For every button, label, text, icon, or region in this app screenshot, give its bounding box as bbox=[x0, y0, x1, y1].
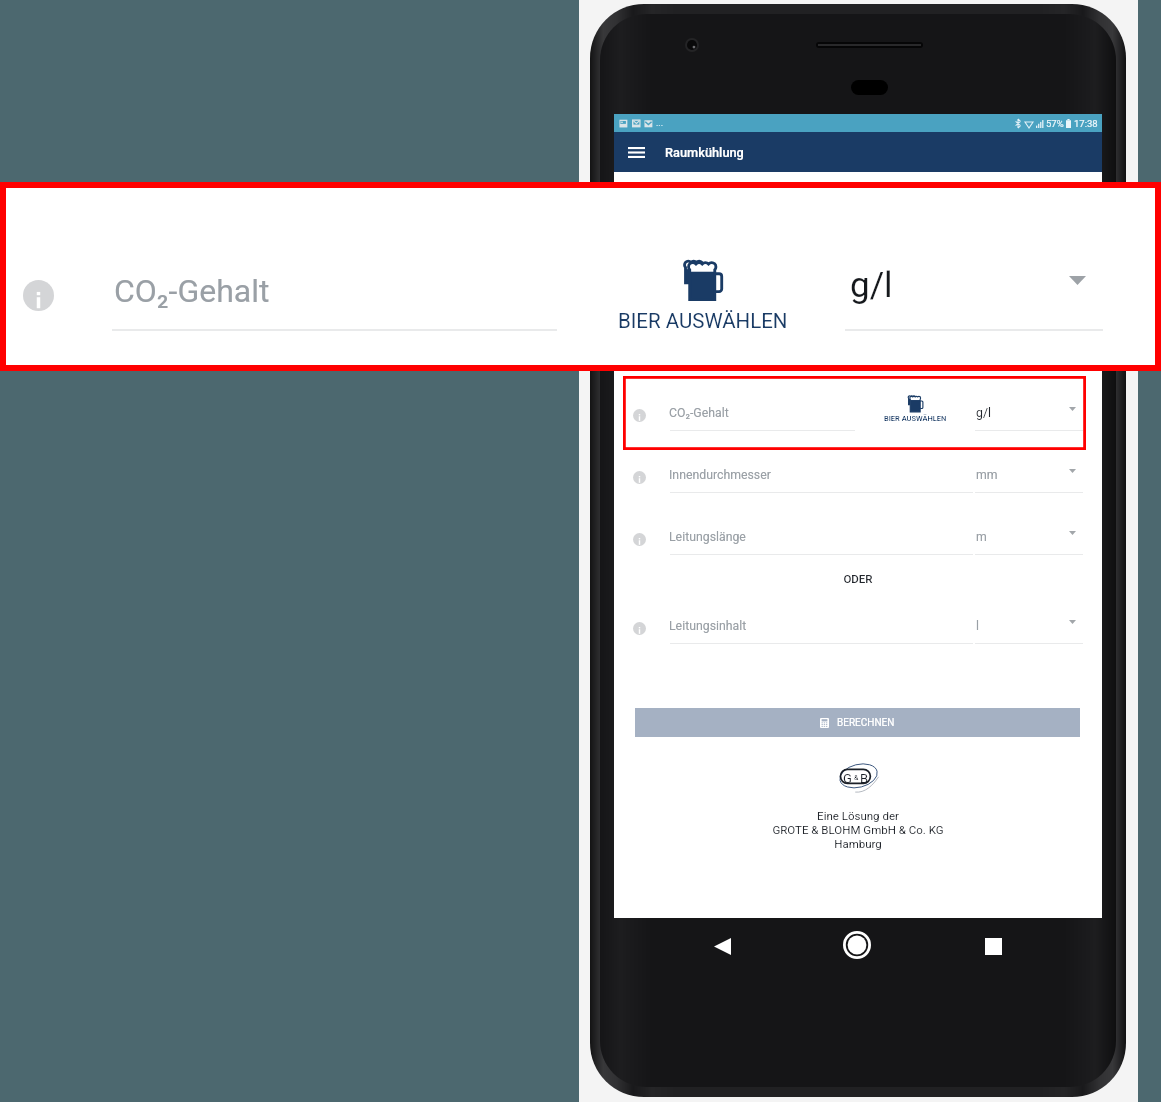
staticText: g/l bbox=[976, 406, 991, 420]
button[interactable]: BIER AUSWÄHLEN bbox=[615, 262, 791, 333]
button[interactable]: Innendurchmesser bbox=[614, 438, 1102, 500]
button[interactable]: Leitungsinhalt bbox=[614, 589, 1102, 651]
button[interactable]: Open navigation menu bbox=[620, 136, 652, 168]
staticText: l bbox=[976, 619, 979, 633]
staticText: Leitungsinhalt bbox=[669, 619, 747, 633]
staticText: BIER AUSWÄHLEN bbox=[618, 309, 788, 333]
staticText: G bbox=[843, 771, 852, 786]
staticText: BIER AUSWÄHLEN bbox=[884, 414, 947, 423]
staticText: g/l bbox=[850, 265, 893, 306]
staticText: Eine Lösung der GROTE & BLOHM GmbH & Co.… bbox=[614, 809, 1102, 851]
button[interactable]: g/l bbox=[845, 246, 1111, 342]
button[interactable]: CO₂-Gehalt bbox=[614, 376, 1102, 438]
button[interactable]: Recent apps bbox=[974, 927, 1012, 965]
button[interactable]: Leitungslänge bbox=[614, 500, 1102, 562]
staticText: Raumkühlung bbox=[665, 145, 744, 160]
button[interactable]: Info about CO2 content bbox=[23, 280, 54, 311]
staticText: BERECHNEN bbox=[837, 717, 895, 729]
staticText: m bbox=[976, 530, 987, 544]
staticText: Leitungslänge bbox=[669, 530, 746, 544]
staticText: 57% bbox=[1046, 118, 1064, 129]
staticText: Innendurchmesser bbox=[669, 468, 771, 482]
button[interactable]: CO₂-Gehalt bbox=[112, 250, 557, 334]
staticText: CO₂-Gehalt bbox=[114, 272, 270, 310]
staticText: mm bbox=[976, 468, 998, 482]
staticText: ... bbox=[656, 118, 664, 129]
staticText: & bbox=[854, 774, 859, 782]
button[interactable]: mm bbox=[974, 438, 1084, 452]
staticText: 17:38 bbox=[1074, 118, 1098, 129]
button[interactable]: Home bbox=[838, 926, 876, 964]
button[interactable]: g/l bbox=[974, 376, 1084, 390]
staticText: ODER bbox=[614, 572, 1102, 585]
button[interactable]: BERECHNEN bbox=[635, 708, 1080, 737]
staticText: B bbox=[860, 771, 869, 786]
staticText: CO₂-Gehalt bbox=[669, 406, 729, 420]
button[interactable]: Back bbox=[703, 927, 741, 965]
button[interactable]: BIER AUSWÄHLEN bbox=[860, 396, 970, 423]
